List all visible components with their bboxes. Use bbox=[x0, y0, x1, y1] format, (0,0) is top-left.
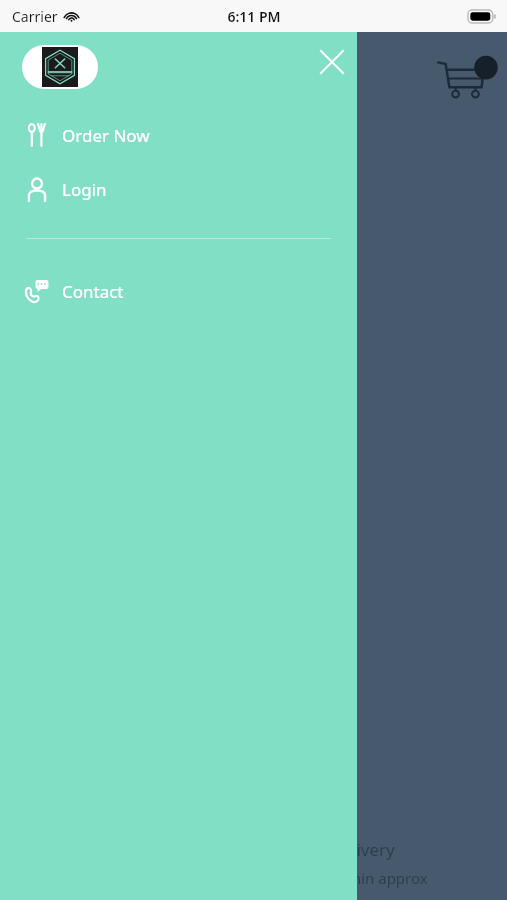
staticText: Login bbox=[62, 178, 107, 201]
button[interactable]: Order Now bbox=[0, 116, 357, 154]
staticText: 15min approx bbox=[330, 868, 428, 888]
staticText: 6:11 PM bbox=[227, 7, 281, 26]
button[interactable]: Logo bbox=[22, 45, 98, 89]
staticText: Contact bbox=[62, 280, 124, 303]
button[interactable]: Cart bbox=[437, 52, 499, 104]
button[interactable]: Close menu bbox=[308, 38, 356, 86]
button[interactable]: Login bbox=[0, 170, 357, 208]
staticText: Carrier bbox=[12, 7, 58, 26]
staticText: Order Now bbox=[62, 124, 150, 147]
staticText: Delivery bbox=[330, 838, 395, 861]
button[interactable]: Contact bbox=[0, 272, 357, 310]
